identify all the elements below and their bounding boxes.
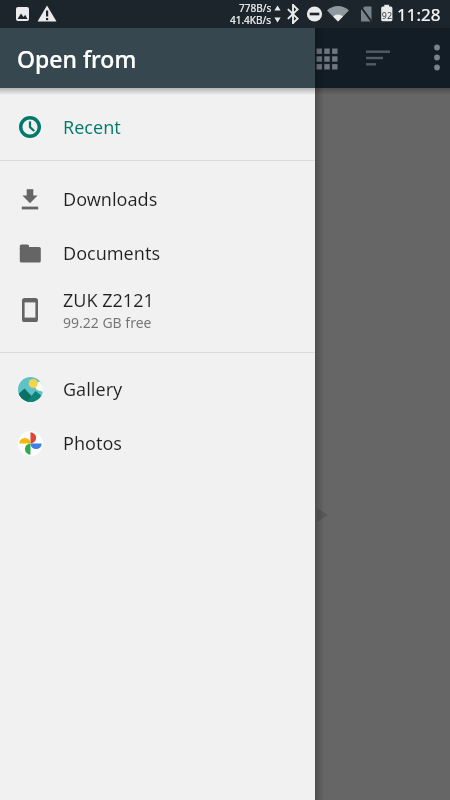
staticText: 99.22 GB free bbox=[63, 313, 152, 332]
staticText: 41.4KB/s bbox=[230, 13, 272, 26]
button[interactable]: Photos bbox=[0, 416, 315, 470]
button[interactable]: Recent bbox=[0, 100, 315, 154]
button[interactable]: Gallery bbox=[0, 362, 315, 416]
staticText: 11:28 bbox=[397, 3, 441, 26]
staticText: Downloads bbox=[63, 187, 158, 212]
staticText: Documents bbox=[63, 241, 161, 266]
button[interactable]: Documents bbox=[0, 226, 315, 280]
staticText: Photos bbox=[63, 431, 122, 456]
staticText: ZUK Z2121 bbox=[63, 288, 154, 313]
staticText: 778B/s bbox=[239, 1, 272, 14]
staticText: Gallery bbox=[63, 377, 123, 402]
button[interactable]: ZUK Z2121 bbox=[0, 280, 315, 340]
staticText: Open from bbox=[17, 43, 137, 74]
button[interactable]: Downloads bbox=[0, 172, 315, 226]
staticText: 92 bbox=[381, 9, 393, 21]
staticText: Recent bbox=[63, 115, 121, 140]
